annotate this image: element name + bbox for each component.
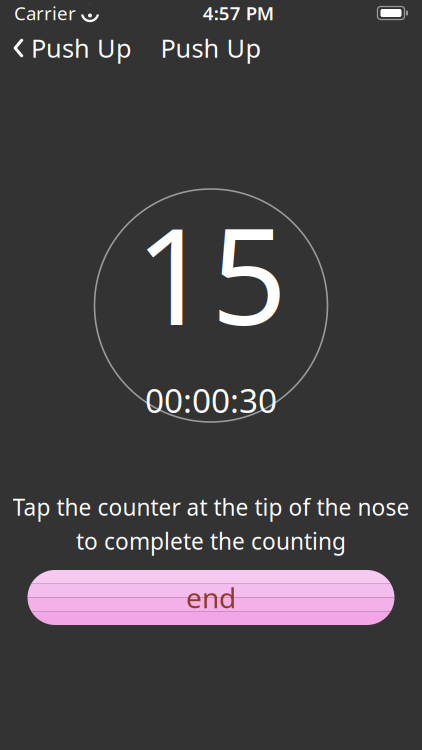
button[interactable]: end [27, 570, 394, 625]
staticText: 15 [135, 185, 287, 362]
staticText: 4:57 PM [203, 1, 274, 25]
staticText: Carrier [14, 1, 76, 25]
staticText: end [186, 579, 236, 616]
staticText: Tap the counter at the tip of the nose [12, 492, 409, 522]
staticText: Push Up [160, 31, 261, 65]
staticText: Push Up [31, 31, 132, 65]
button[interactable]: Push Up [0, 25, 132, 71]
staticText: to complete the counting [76, 526, 346, 556]
staticText: 00:00:30 [145, 378, 277, 422]
